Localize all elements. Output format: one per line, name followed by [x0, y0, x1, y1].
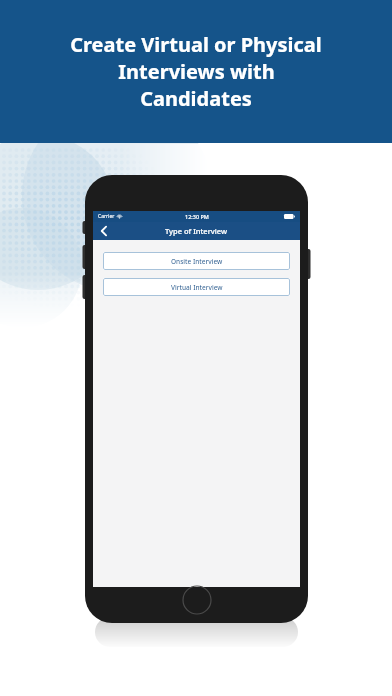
button[interactable]: Back — [96, 222, 112, 240]
staticText: Type of Interview — [165, 226, 228, 236]
staticText: Carrier — [98, 213, 115, 220]
staticText: Candidates — [140, 85, 252, 112]
staticText: 12:30 PM — [185, 213, 209, 220]
staticText: Create Virtual or Physical — [70, 31, 322, 58]
button[interactable]: Onsite Interview — [103, 252, 290, 270]
staticText: Virtual Interview — [171, 283, 223, 292]
button[interactable]: Virtual Interview — [103, 278, 290, 296]
button[interactable]: Home — [182, 585, 212, 615]
staticText: Onsite Interview — [171, 257, 223, 266]
staticText: Interviews with — [118, 58, 275, 85]
